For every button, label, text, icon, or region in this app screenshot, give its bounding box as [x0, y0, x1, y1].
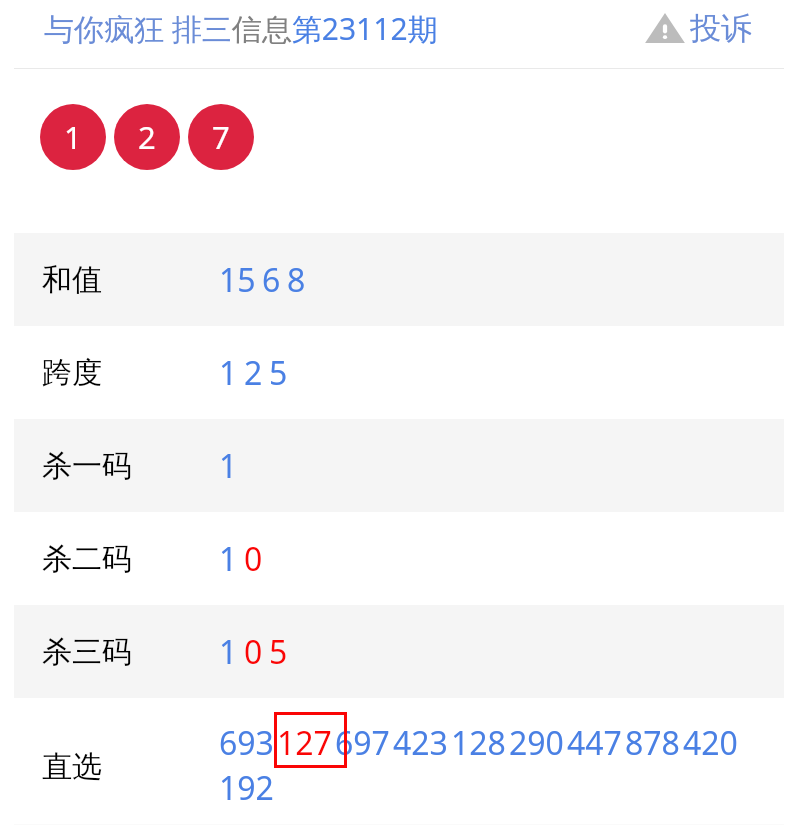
staticText: 杀一码: [42, 447, 219, 485]
staticText: 878: [625, 721, 680, 765]
staticText: 跨度: [42, 354, 219, 392]
staticText: 192: [219, 766, 274, 810]
staticText: 127: [277, 721, 332, 765]
staticText: 7: [212, 116, 230, 158]
staticText: 447: [567, 721, 622, 765]
staticText: 697: [335, 721, 390, 765]
button[interactable]: 杀二码: [14, 512, 784, 605]
button[interactable]: 1: [40, 104, 106, 170]
staticText: 290: [509, 721, 564, 765]
staticText: 6: [262, 258, 281, 302]
staticText: 1: [219, 630, 238, 674]
staticText: 15: [219, 258, 256, 302]
staticText: 1: [219, 351, 238, 395]
button[interactable]: 2: [114, 104, 180, 170]
staticText: 8: [287, 258, 306, 302]
button[interactable]: 杀一码: [14, 419, 784, 512]
staticText: 投诉: [690, 9, 752, 48]
staticText: 直选: [42, 748, 219, 786]
staticText: 5: [269, 630, 288, 674]
staticText: 1: [219, 537, 238, 581]
button[interactable]: 7: [188, 104, 254, 170]
staticText: 2: [138, 116, 156, 158]
staticText: 0: [244, 537, 263, 581]
staticText: 5: [269, 351, 288, 395]
staticText: 2: [244, 351, 263, 395]
staticText: 和值: [42, 261, 219, 299]
staticText: 杀三码: [42, 633, 219, 671]
staticText: 693: [219, 721, 274, 765]
staticText: 0: [244, 630, 263, 674]
staticText: 1: [219, 444, 238, 488]
button[interactable]: 杀三码: [14, 605, 784, 698]
button[interactable]: 跨度: [14, 326, 784, 419]
staticText: 128: [451, 721, 506, 765]
staticText: 420: [683, 721, 738, 765]
staticText: 1: [64, 116, 82, 158]
button[interactable]: 与你疯狂 排三信息第23112期: [44, 8, 438, 49]
staticText: 杀二码: [42, 540, 219, 578]
other: 投诉: [648, 14, 682, 43]
button[interactable]: 直选: [14, 698, 784, 824]
button[interactable]: 投诉: [648, 9, 752, 48]
staticText: 423: [393, 721, 448, 765]
button[interactable]: 和值: [14, 233, 784, 326]
